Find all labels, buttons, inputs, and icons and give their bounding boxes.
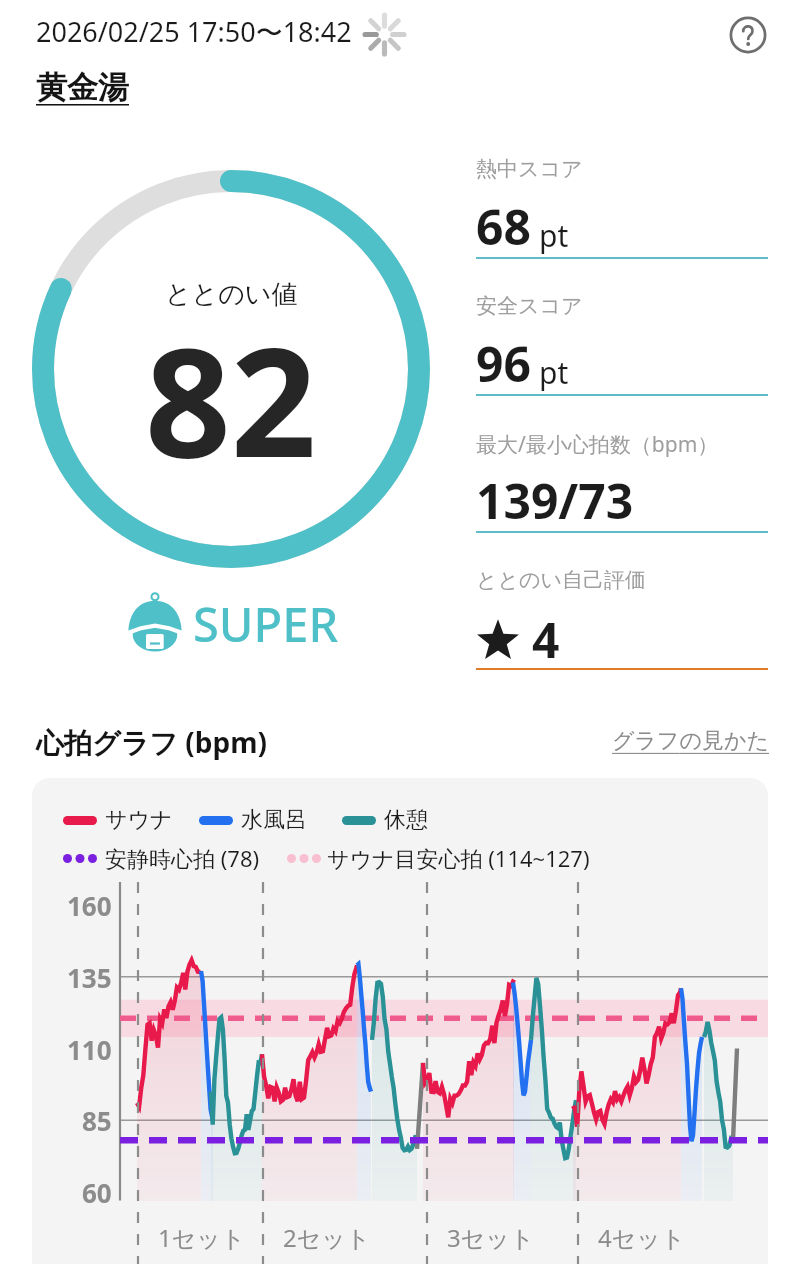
staticText: 2セット <box>283 1221 371 1254</box>
button[interactable]: 最大/最小心拍数（bpm） <box>476 426 768 544</box>
button[interactable]: Help <box>727 14 769 56</box>
staticText: 85 <box>82 1103 112 1138</box>
staticText: 68 <box>476 194 531 259</box>
staticText: 2026/02/25 17:50〜18:42 <box>36 13 352 50</box>
button[interactable]: グラフの見かた <box>612 727 770 755</box>
staticText: 160 <box>67 888 112 923</box>
staticText: ととのい自己評価 <box>476 567 646 593</box>
staticText: ととのい値 <box>165 278 298 311</box>
staticText: 82 <box>145 297 317 501</box>
staticText: 139/73 <box>476 468 634 533</box>
staticText: 96 <box>476 331 531 396</box>
staticText: pt <box>539 215 569 256</box>
staticText: 3セット <box>447 1221 535 1254</box>
button[interactable]: 熱中スコア <box>476 152 768 270</box>
staticText: SUPER <box>193 592 339 656</box>
staticText: 熱中スコア <box>476 156 583 182</box>
staticText: 110 <box>67 1032 112 1067</box>
staticText: 心拍グラフ (bpm) <box>36 723 267 761</box>
staticText: 1セット <box>158 1221 246 1254</box>
staticText: 4 <box>532 607 560 672</box>
staticText: 水風呂 <box>241 806 307 834</box>
button[interactable]: 安全スコア <box>476 289 768 407</box>
staticText: 安全スコア <box>476 293 583 319</box>
staticText: 安静時心拍 (78) <box>105 843 260 873</box>
button[interactable]: ととのい自己評価 <box>476 563 768 681</box>
staticText: pt <box>539 352 569 393</box>
staticText: 135 <box>67 960 112 995</box>
staticText: サウナ <box>105 806 173 834</box>
staticText: グラフの見かた <box>612 727 770 755</box>
staticText: 4セット <box>598 1221 686 1254</box>
staticText: サウナ目安心拍 (114~127) <box>327 843 590 873</box>
staticText: 黄金湯 <box>36 68 129 107</box>
staticText: 60 <box>82 1175 112 1210</box>
staticText: 休憩 <box>384 806 428 834</box>
button[interactable]: 黄金湯 <box>36 68 129 107</box>
staticText: 最大/最小心拍数（bpm） <box>476 430 719 459</box>
